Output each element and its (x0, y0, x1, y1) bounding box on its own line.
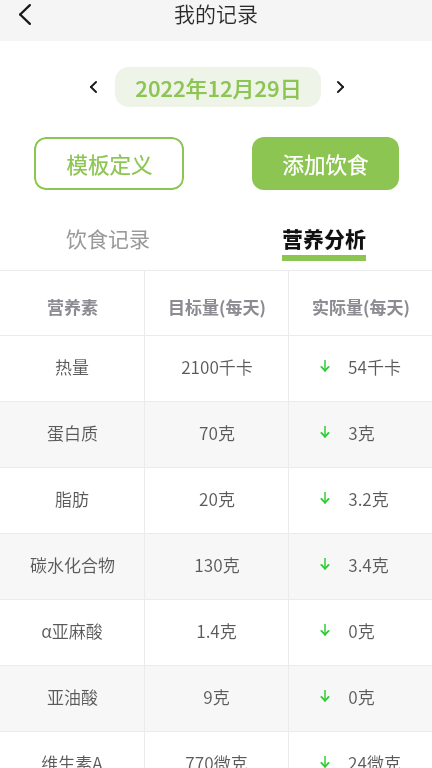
staticText: 1.4克 (196, 618, 237, 643)
button[interactable]: 营养分析 (216, 226, 432, 261)
button[interactable]: Back (3, 0, 47, 35)
staticText: 模板定义 (66, 148, 153, 179)
staticText: 亚油酸 (47, 684, 98, 709)
staticText: 24微克 (348, 750, 401, 768)
staticText: 2100千卡 (181, 354, 253, 379)
staticText: 770微克 (185, 750, 248, 768)
staticText: 营养素 (47, 294, 98, 319)
button[interactable]: 饮食记录 (0, 226, 216, 261)
staticText: 9克 (203, 684, 230, 709)
button[interactable]: Next day (325, 72, 355, 102)
staticText: 0克 (348, 618, 375, 643)
button[interactable]: Previous day (78, 72, 108, 102)
staticText: 20克 (199, 486, 235, 511)
staticText: 目标量(每天) (168, 294, 266, 319)
staticText: α亚麻酸 (41, 618, 103, 643)
staticText: 饮食记录 (66, 223, 150, 253)
staticText: 添加饮食 (282, 148, 369, 179)
button[interactable]: 添加饮食 (252, 137, 399, 190)
staticText: 3.2克 (348, 486, 389, 511)
staticText: 碳水化合物 (30, 552, 115, 577)
button[interactable]: 模板定义 (34, 137, 184, 190)
staticText: 130克 (194, 552, 240, 577)
staticText: 营养分析 (282, 223, 366, 253)
staticText: 蛋白质 (47, 420, 98, 445)
staticText: 实际量(每天) (312, 294, 410, 319)
staticText: 脂肪 (55, 486, 89, 511)
button[interactable]: 2022年12月29日 (115, 67, 321, 107)
staticText: 热量 (55, 354, 89, 379)
staticText: 3克 (348, 420, 375, 445)
staticText: 2022年12月29日 (135, 71, 302, 103)
staticText: 维生素A (41, 750, 103, 768)
staticText: 0克 (348, 684, 375, 709)
staticText: 我的记录 (174, 0, 258, 28)
staticText: 70克 (199, 420, 235, 445)
staticText: 3.4克 (348, 552, 389, 577)
staticText: 54千卡 (348, 354, 401, 379)
